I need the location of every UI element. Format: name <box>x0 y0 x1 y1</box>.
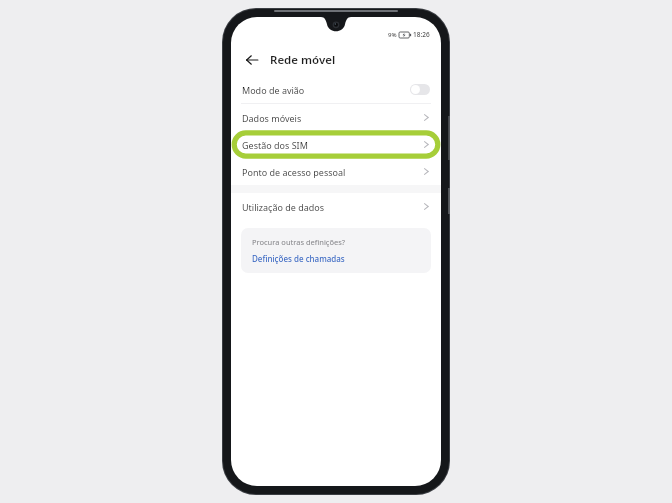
staticText: 18:26 <box>413 30 430 39</box>
staticText: Modo de avião <box>242 84 410 96</box>
button[interactable]: Back <box>242 50 262 70</box>
button[interactable]: Modo de avião <box>231 76 441 103</box>
button[interactable]: Airplane mode toggle <box>410 84 430 95</box>
staticText: 9% <box>388 31 397 39</box>
staticText: Ponto de acesso pessoal <box>242 166 423 178</box>
staticText: Gestão dos SIM <box>242 139 423 151</box>
button[interactable]: Ponto de acesso pessoal <box>231 158 441 185</box>
staticText: Rede móvel <box>270 52 336 68</box>
staticText: Utilização de dados <box>242 201 423 213</box>
staticText: Dados móveis <box>242 112 423 124</box>
button[interactable]: Procura outras definições? <box>241 228 431 273</box>
staticText: Definições de chamadas <box>252 253 345 264</box>
button[interactable]: Gestão dos SIM <box>231 131 441 158</box>
button[interactable]: Dados móveis <box>231 104 441 131</box>
staticText: Procura outras definições? <box>252 237 346 247</box>
button[interactable]: Utilização de dados <box>231 193 441 220</box>
